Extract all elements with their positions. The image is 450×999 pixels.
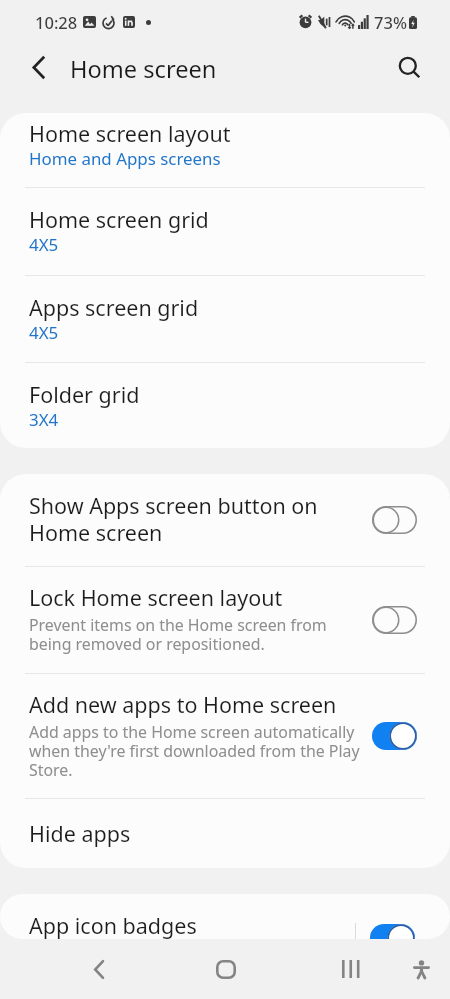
staticText: Hide apps [29, 819, 131, 848]
staticText: 10:28 [35, 11, 78, 33]
staticText: Home screen layout [29, 119, 231, 148]
button[interactable]: Switch on [370, 924, 415, 939]
staticText: 4X5 [29, 321, 59, 344]
button[interactable]: Switch off [372, 506, 417, 534]
button[interactable]: Home screen layout [0, 113, 450, 187]
button[interactable]: Recent apps [321, 939, 381, 999]
staticText: App icon badges [29, 911, 197, 939]
button[interactable]: Switch on [372, 722, 417, 750]
staticText: Lock Home screen layout [29, 583, 283, 612]
button[interactable]: Hide apps [0, 798, 450, 868]
button[interactable]: Home screen grid [0, 187, 450, 275]
button[interactable]: Show Apps screen button on Home screen [0, 474, 450, 566]
staticText: 3X4 [29, 408, 59, 431]
button[interactable]: Back [18, 46, 60, 88]
staticText: Apps screen grid [29, 293, 199, 322]
staticText: Add apps to the Home screen automaticall… [29, 721, 362, 781]
button[interactable]: Back [69, 939, 129, 999]
staticText: Show Apps screen button on Home screen [29, 491, 362, 547]
staticText: Folder grid [29, 380, 140, 409]
staticText: 4X5 [29, 233, 59, 256]
staticText: Home screen [70, 53, 217, 85]
button[interactable]: Search [389, 47, 431, 89]
staticText: Prevent items on the Home screen from be… [29, 614, 362, 655]
button[interactable]: Accessibility [391, 939, 450, 999]
staticText: 73% [374, 11, 407, 33]
staticText: Add new apps to Home screen [29, 690, 337, 719]
button[interactable]: Add new apps to Home screen [0, 673, 450, 798]
button[interactable]: Folder grid [0, 362, 450, 448]
button[interactable]: Apps screen grid [0, 275, 450, 363]
button[interactable]: Switch off [372, 606, 417, 634]
button[interactable]: Home [196, 939, 256, 999]
button[interactable]: Lock Home screen layout [0, 566, 450, 673]
staticText: Home screen grid [29, 205, 209, 234]
staticText: Home and Apps screens [29, 147, 221, 170]
